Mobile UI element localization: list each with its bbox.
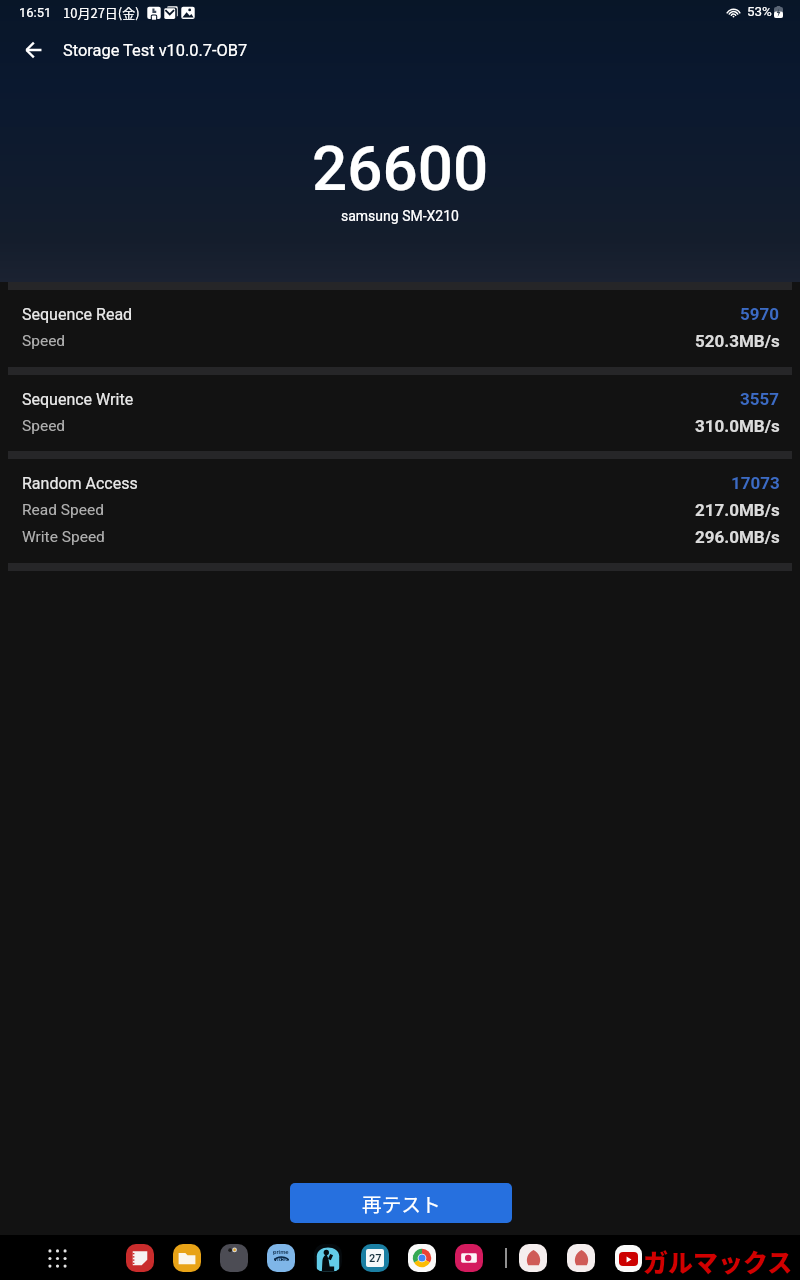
button[interactable]: Prime Video <box>267 1244 295 1272</box>
button[interactable]: Sequence Read <box>0 290 800 367</box>
staticText: Speed <box>22 332 66 350</box>
staticText: Random Access <box>22 474 138 493</box>
button[interactable]: Sequence Write <box>0 375 800 451</box>
staticText: 17073 <box>731 473 780 493</box>
staticText: Read Speed <box>22 501 104 519</box>
staticText: ガルマックス <box>643 1243 793 1279</box>
button[interactable]: Random Access <box>0 459 800 563</box>
staticText: 10月27日(金) <box>63 3 140 22</box>
staticText: samsung SM-X210 <box>341 208 459 224</box>
button[interactable]: All apps <box>47 1248 68 1269</box>
staticText: 5970 <box>740 304 780 324</box>
staticText: 3557 <box>740 389 780 409</box>
button[interactable]: 再テスト <box>290 1183 512 1223</box>
button[interactable]: Chrome <box>408 1244 436 1272</box>
button[interactable]: Recent app <box>567 1244 595 1272</box>
staticText: 16:51 <box>19 5 52 20</box>
staticText: Storage Test v10.0.7-OB7 <box>63 41 248 60</box>
button[interactable]: Back <box>15 32 51 68</box>
staticText: Sequence Write <box>22 390 134 409</box>
staticText: 再テスト <box>362 1189 441 1218</box>
button[interactable]: My Files <box>173 1244 201 1272</box>
staticText: 520.3MB/s <box>695 331 780 351</box>
button[interactable]: Camera <box>455 1244 483 1272</box>
button[interactable]: Recent app <box>519 1244 547 1272</box>
staticText: Write Speed <box>22 528 105 546</box>
staticText: Speed <box>22 417 66 435</box>
button[interactable]: Gallery <box>220 1244 248 1272</box>
staticText: 27 <box>369 1252 382 1265</box>
staticText: 53% <box>747 4 772 20</box>
staticText: 310.0MB/s <box>695 416 780 436</box>
staticText: 26600 <box>312 132 489 205</box>
staticText: 217.0MB/s <box>695 500 780 520</box>
staticText: 296.0MB/s <box>695 527 780 547</box>
staticText: Sequence Read <box>22 305 133 324</box>
button[interactable]: Kindle <box>314 1244 342 1272</box>
staticText: prime <box>273 1248 289 1255</box>
button[interactable]: Calendar <box>361 1244 389 1272</box>
staticText: video <box>274 1255 289 1262</box>
button[interactable]: Samsung Notes <box>126 1244 154 1272</box>
